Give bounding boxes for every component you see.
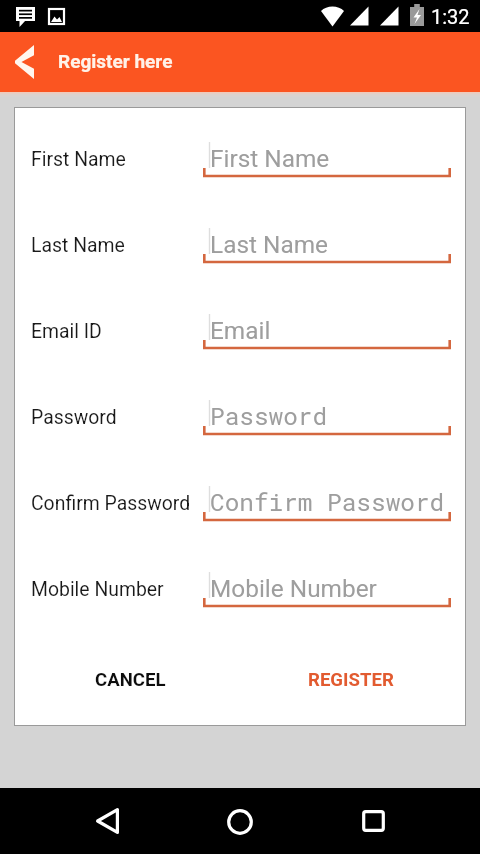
staticText: 1:32 <box>431 5 470 28</box>
staticText: Mobile Number <box>210 574 377 603</box>
staticText: Mobile Number <box>31 578 164 601</box>
button[interactable]: Mobile Number <box>203 564 451 609</box>
button[interactable]: CANCEL <box>83 659 178 701</box>
button[interactable]: Email <box>203 306 451 351</box>
button[interactable]: Back <box>83 797 131 845</box>
button[interactable]: Password <box>203 392 451 437</box>
button[interactable]: First Name <box>203 134 451 179</box>
staticText: CANCEL <box>95 669 166 691</box>
staticText: Last Name <box>31 234 125 257</box>
staticText: Email ID <box>31 320 102 343</box>
button[interactable]: Recent apps <box>349 797 397 845</box>
button[interactable]: Navigate back <box>4 42 44 82</box>
staticText: REGISTER <box>308 669 394 691</box>
button[interactable]: Last Name <box>203 220 451 265</box>
staticText: First Name <box>31 148 126 171</box>
button[interactable]: REGISTER <box>296 659 406 701</box>
staticText: Password <box>31 406 117 429</box>
staticText: Password <box>210 399 328 431</box>
staticText: Last Name <box>210 230 329 259</box>
button[interactable]: Confirm Password <box>203 478 451 523</box>
button[interactable]: Home <box>216 798 264 846</box>
staticText: Register here <box>58 50 173 72</box>
staticText: Confirm Password <box>210 485 445 517</box>
staticText: Confirm Password <box>31 492 191 515</box>
staticText: First Name <box>210 144 330 173</box>
staticText: Email <box>210 316 271 345</box>
